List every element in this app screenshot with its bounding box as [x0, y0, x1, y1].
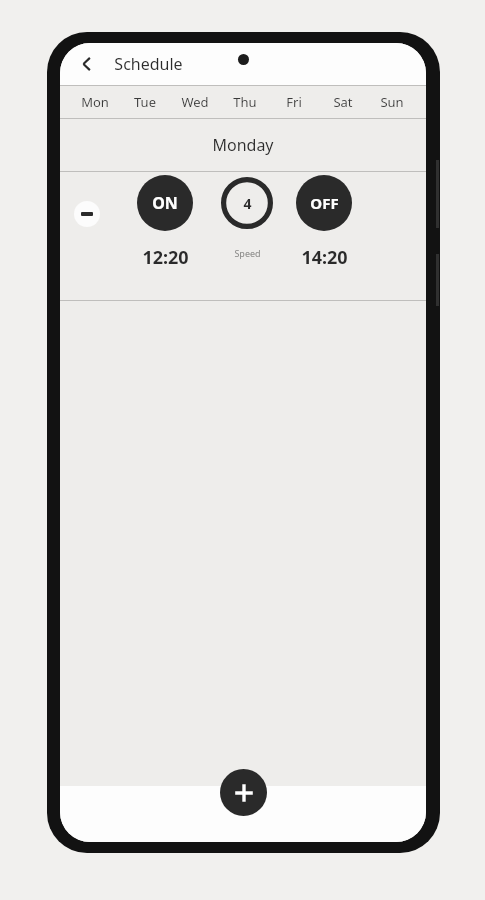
button[interactable]: Fri: [269, 86, 318, 118]
staticText: Wed: [181, 93, 209, 111]
staticText: Sat: [333, 93, 353, 111]
button[interactable]: ON: [134, 175, 196, 270]
button[interactable]: Thu: [220, 86, 269, 118]
button[interactable]: Back: [70, 47, 104, 81]
button[interactable]: Sun: [367, 86, 416, 118]
staticText: Fri: [286, 93, 302, 111]
staticText: Schedule: [114, 53, 183, 75]
staticText: ON: [152, 192, 178, 214]
button[interactable]: Remove schedule: [74, 201, 100, 227]
staticText: Tue: [134, 93, 156, 111]
button[interactable]: Add schedule: [220, 769, 267, 816]
staticText: Monday: [212, 134, 274, 156]
button[interactable]: OFF: [293, 175, 355, 270]
staticText: Speed: [234, 247, 261, 259]
staticText: Sun: [380, 93, 404, 111]
staticText: 14:20: [301, 245, 348, 270]
staticText: Mon: [81, 93, 109, 111]
staticText: OFF: [310, 193, 339, 213]
staticText: 12:20: [142, 245, 189, 270]
button[interactable]: Sat: [318, 86, 367, 118]
staticText: Thu: [233, 93, 257, 111]
button[interactable]: 4: [216, 177, 278, 259]
button[interactable]: Tue: [120, 86, 170, 118]
button[interactable]: Wed: [170, 86, 220, 118]
button[interactable]: Mon: [70, 86, 120, 118]
staticText: 4: [243, 194, 252, 213]
